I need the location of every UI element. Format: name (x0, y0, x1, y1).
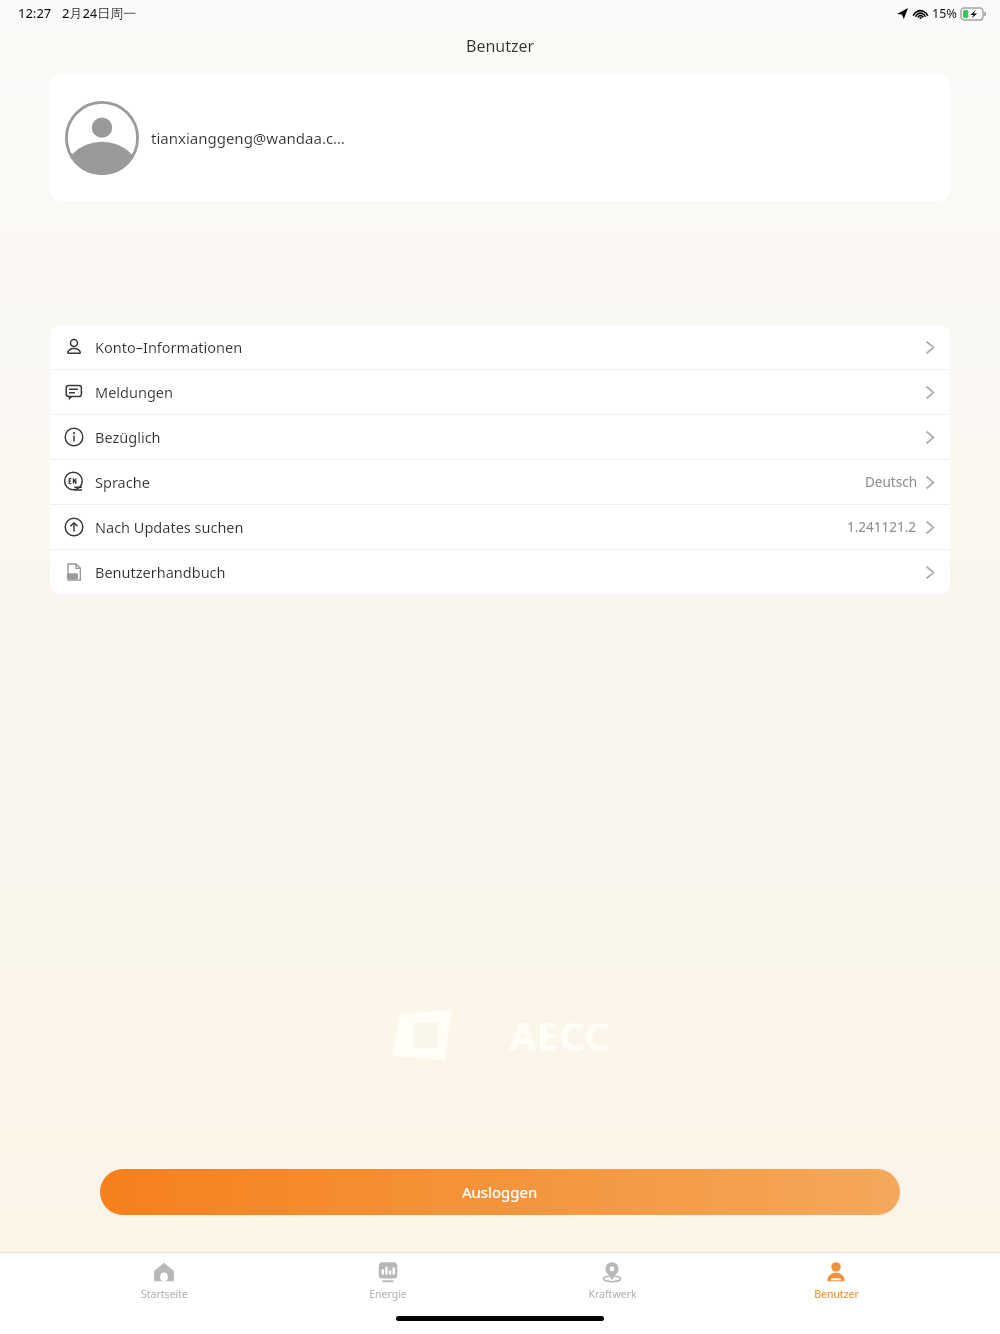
staticText: tianxianggeng@wandaa.c… (151, 128, 345, 148)
staticText: Konto–Informationen (95, 337, 243, 357)
staticText: 15% (932, 5, 957, 22)
staticText: Benutzer (814, 1287, 859, 1301)
staticText: Startseite (141, 1287, 188, 1301)
button[interactable]: Konto–Informationen (50, 325, 950, 369)
staticText: Energie (369, 1287, 407, 1301)
staticText: Deutsch (865, 473, 917, 491)
button[interactable]: Sprache (50, 460, 950, 504)
staticText: 12:27 (18, 4, 52, 22)
staticText: Nach Updates suchen (95, 517, 244, 537)
staticText: AECC (509, 1008, 610, 1062)
staticText: Ausloggen (462, 1182, 538, 1202)
button[interactable]: Ausloggen (100, 1169, 900, 1215)
button[interactable]: tianxianggeng@wandaa.c… (50, 74, 950, 201)
staticText: Benutzer (466, 35, 535, 57)
button[interactable]: Kraftwerk (552, 1259, 672, 1303)
staticText: Bezüglich (95, 427, 161, 447)
button[interactable]: Meldungen (50, 370, 950, 414)
button[interactable]: Benutzerhandbuch (50, 550, 950, 594)
button[interactable]: Benutzer (776, 1259, 896, 1303)
button[interactable]: Bezüglich (50, 415, 950, 459)
staticText: Sprache (95, 472, 150, 492)
button[interactable]: Startseite (104, 1259, 224, 1303)
staticText: Meldungen (95, 382, 173, 402)
staticText: Benutzerhandbuch (95, 562, 226, 582)
button[interactable]: Energie (328, 1259, 448, 1303)
button[interactable]: Nach Updates suchen (50, 505, 950, 549)
staticText: Kraftwerk (588, 1287, 637, 1301)
staticText: 1.241121.2 (847, 518, 917, 536)
staticText: 2月24日周一 (62, 4, 137, 22)
